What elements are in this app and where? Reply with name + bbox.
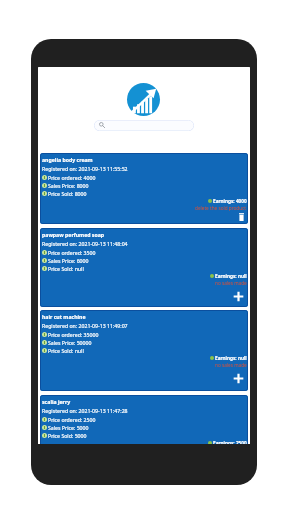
staticText: delete the sold product [195, 205, 247, 211]
staticText: Sales Price: 6000 [48, 257, 89, 264]
staticText: scalia jerry [42, 398, 71, 405]
button[interactable] [94, 120, 194, 131]
staticText: Earnings: 4000 [213, 198, 247, 204]
staticText: Price Sold: null [48, 347, 84, 354]
staticText: Sales Price: 50000 [48, 339, 92, 346]
staticText: Price ordered: 35000 [48, 331, 99, 338]
staticText: hair cut machine [42, 313, 86, 320]
staticText: Price ordered: 3500 [48, 249, 96, 256]
button[interactable]: Delete sold product [235, 211, 248, 223]
staticText: Earnings: null [215, 273, 247, 279]
staticText: Earnings: null [215, 355, 247, 361]
staticText: Earnings: 2500 [213, 440, 247, 444]
staticText: Price Sold: 5000 [48, 432, 87, 439]
staticText: Sales Price: 5000 [48, 424, 89, 431]
staticText: angelia body cream [42, 156, 93, 163]
button[interactable]: scalia jerry [40, 395, 248, 444]
staticText: Price Sold: 8000 [48, 190, 87, 197]
staticText: Sales Price: 8000 [48, 182, 89, 189]
button[interactable]: Add sale [232, 372, 245, 384]
button[interactable]: hair cut machine [40, 310, 248, 391]
button[interactable]: angelia body cream [40, 153, 248, 224]
staticText: no sales made [215, 280, 247, 286]
staticText: Registered on: 2021-09-13 11:47:28 [42, 407, 128, 414]
staticText: Price ordered: 2500 [48, 416, 96, 423]
staticText: pawpaw perfumed soap [42, 231, 105, 238]
button[interactable]: pawpaw perfumed soap [40, 228, 248, 307]
staticText: no sales made [215, 362, 247, 368]
staticText: Registered on: 2021-09-13 11:49:07 [42, 322, 128, 329]
staticText: Registered on: 2021-09-13 11:48:04 [42, 240, 128, 247]
button[interactable]: Add sale [232, 290, 245, 302]
staticText: Registered on: 2021-09-13 11:55:52 [42, 165, 128, 172]
staticText: Price Sold: null [48, 265, 84, 272]
staticText: Price ordered: 4000 [48, 174, 96, 181]
